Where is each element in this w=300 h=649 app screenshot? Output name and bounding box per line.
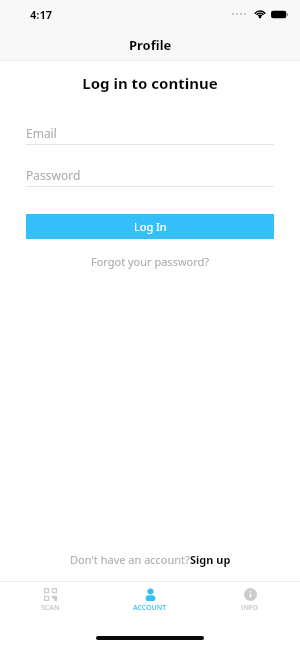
staticText: 4:17 (30, 7, 52, 22)
staticText: ACCOUNT (133, 603, 167, 613)
staticText: Don't have an account? (70, 552, 190, 567)
button[interactable]: Log In (26, 214, 274, 239)
staticText: Profile (129, 36, 172, 54)
other: Info (244, 588, 257, 601)
button[interactable]: Password (26, 164, 274, 187)
button[interactable]: Forgot your password? (0, 252, 300, 271)
staticText: INFO (241, 603, 259, 613)
staticText: Email (26, 125, 57, 141)
button[interactable]: Account (100, 582, 200, 613)
staticText: Log in to continue (0, 73, 300, 93)
staticText: SCAN (41, 603, 60, 613)
staticText: Password (26, 167, 81, 183)
button[interactable]: Sign up (190, 552, 231, 567)
other: Account (144, 588, 157, 601)
button[interactable]: Scan (0, 582, 100, 613)
button[interactable]: Info (200, 582, 300, 613)
button[interactable]: Email (26, 122, 274, 145)
other: Scan (44, 588, 57, 601)
staticText: Log In (134, 219, 167, 234)
